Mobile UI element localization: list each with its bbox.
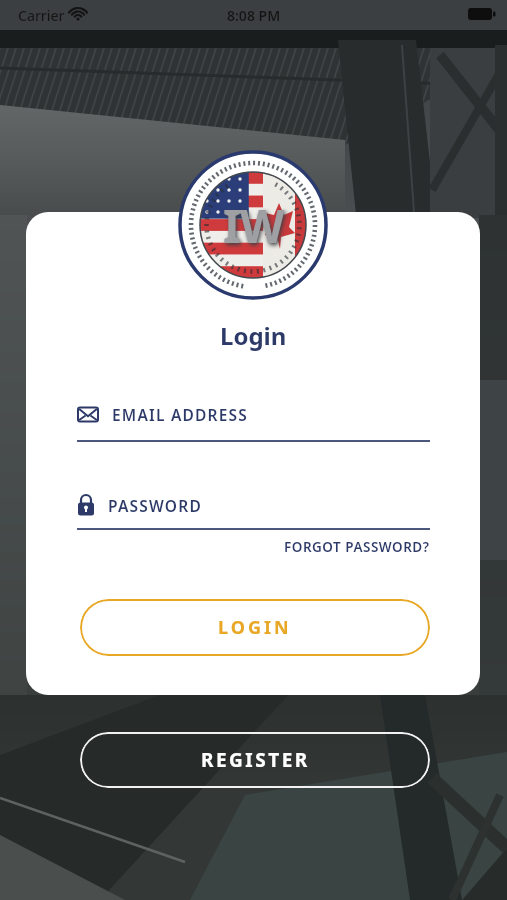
- staticText: 8:08 PM: [227, 6, 281, 25]
- staticText: EMAIL ADDRESS: [112, 404, 249, 425]
- staticText: LOGIN: [218, 615, 292, 640]
- button[interactable]: FORGOT PASSWORD?: [284, 538, 430, 556]
- staticText: REGISTER: [201, 747, 310, 773]
- staticText: Carrier: [18, 6, 65, 25]
- button[interactable]: EMAIL ADDRESS: [77, 404, 249, 425]
- button[interactable]: REGISTER: [80, 732, 430, 788]
- staticText: Login: [220, 319, 287, 352]
- staticText: PASSWORD: [108, 495, 202, 516]
- staticText: IW: [223, 194, 284, 257]
- button[interactable]: LOGIN: [80, 599, 430, 656]
- button[interactable]: PASSWORD: [77, 494, 202, 516]
